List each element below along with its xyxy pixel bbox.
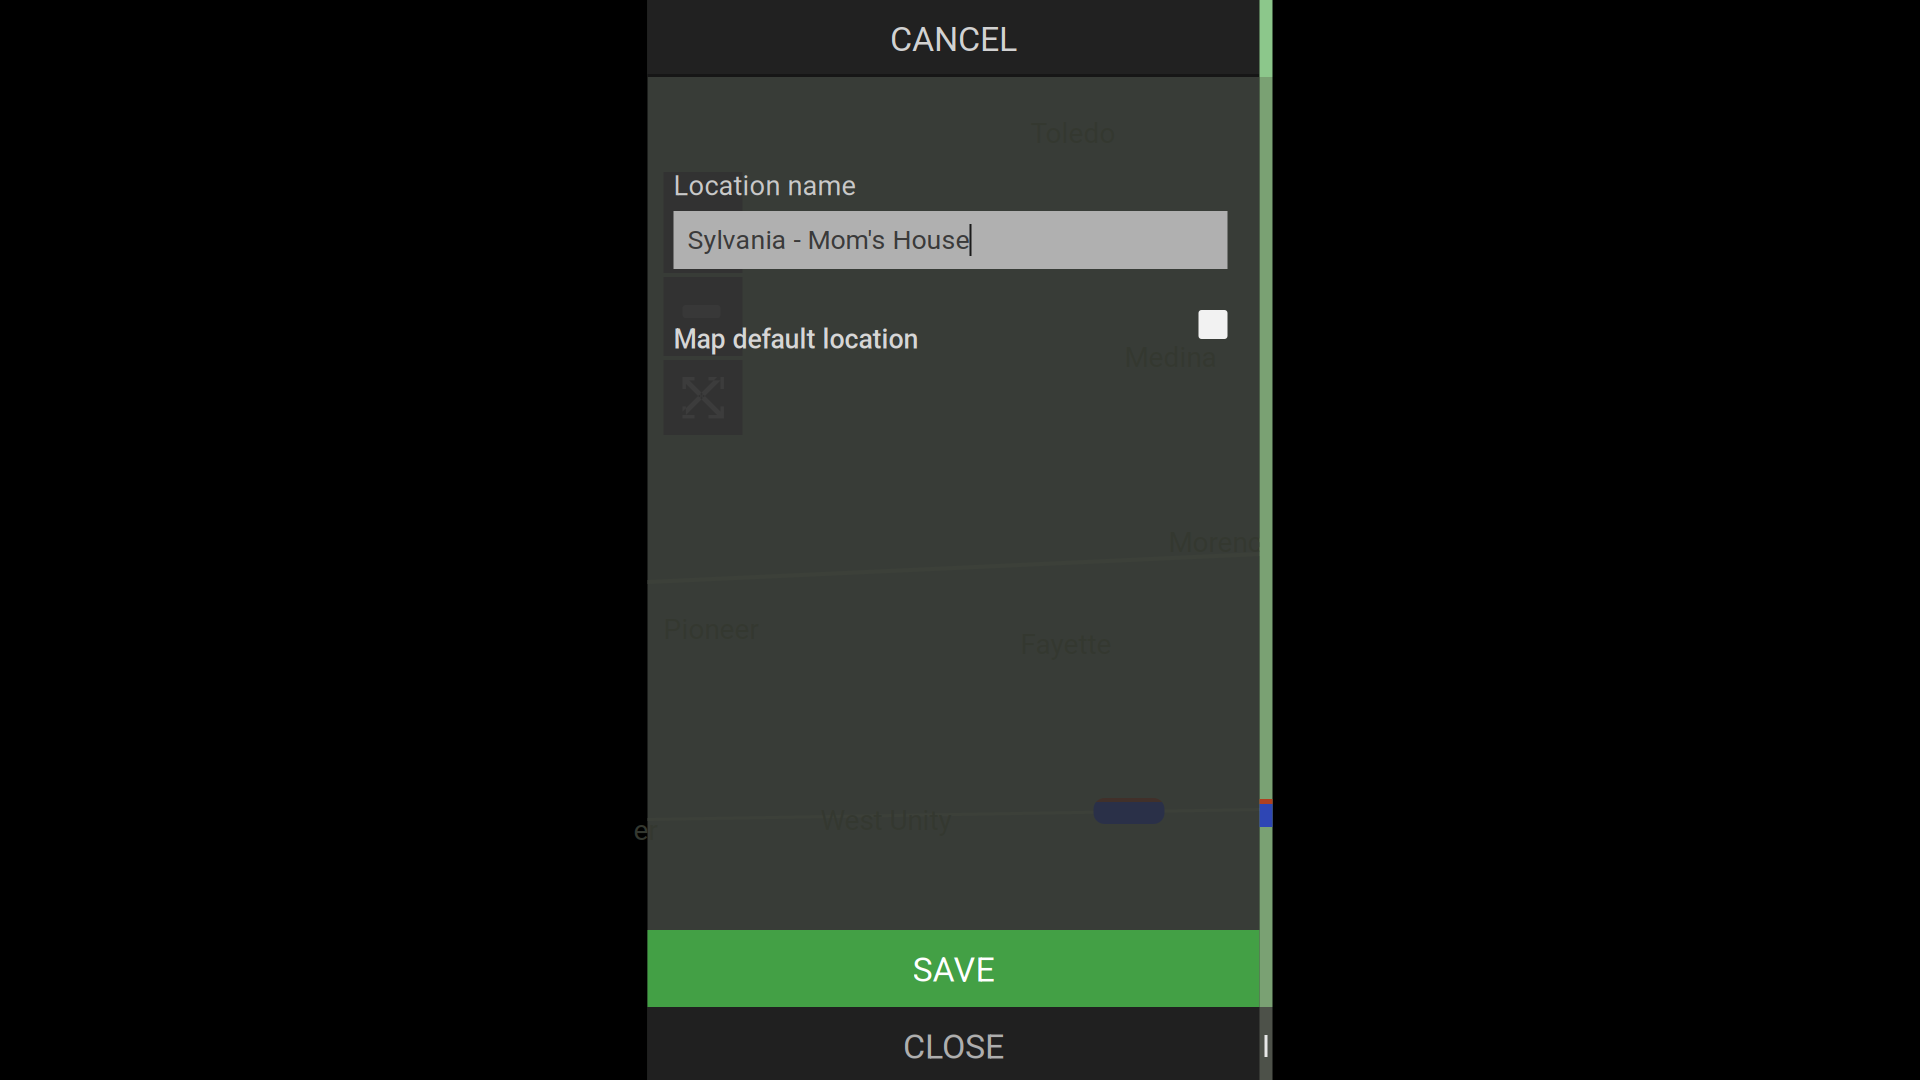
staticText: Sylvania - Mom's House bbox=[687, 224, 969, 256]
staticText: Location name bbox=[673, 170, 855, 202]
button[interactable]: Zoom out bbox=[663, 277, 742, 356]
button[interactable]: Full screen bbox=[663, 360, 742, 435]
button[interactable]: Map default location bbox=[673, 303, 1227, 355]
button[interactable]: CLOSE bbox=[647, 1007, 1259, 1080]
staticText: er bbox=[633, 814, 657, 847]
button[interactable]: SAVE bbox=[647, 930, 1259, 1007]
staticText: Morenci bbox=[1168, 526, 1269, 559]
staticText: CLOSE bbox=[903, 1027, 1004, 1067]
button[interactable]: Sylvania - Mom's House bbox=[673, 211, 1227, 269]
button[interactable]: Zoom in bbox=[663, 172, 742, 273]
staticText: Map default location bbox=[673, 324, 918, 355]
button[interactable]: CANCEL bbox=[647, 0, 1259, 74]
staticText: CANCEL bbox=[890, 20, 1017, 59]
staticText: SAVE bbox=[912, 950, 994, 990]
